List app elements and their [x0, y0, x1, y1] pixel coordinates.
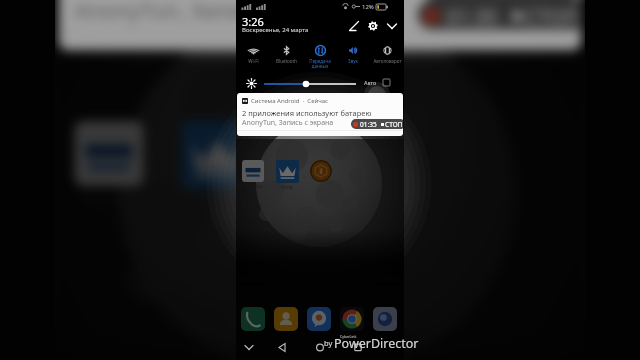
button[interactable]: Система Android · Сейчас: [58, 0, 581, 50]
staticText: Bluetooth: [276, 58, 297, 64]
staticText: CyberLink: [340, 334, 357, 339]
button[interactable]: Передача данных: [303, 42, 337, 70]
staticText: TTL Mas: [243, 183, 263, 190]
button[interactable]: TTL Master: [74, 121, 144, 186]
button[interactable]: Система Android · Сейчас: [237, 93, 403, 136]
button[interactable]: Settings: [366, 19, 380, 33]
staticText: СТОП: [525, 3, 581, 30]
staticText: Автоповорот: [373, 58, 402, 64]
button[interactable]: App: [310, 160, 332, 182]
button[interactable]: Chrome: [340, 307, 364, 331]
button[interactable]: Автоповорот: [370, 42, 404, 64]
button[interactable]: Home: [314, 340, 326, 355]
button[interactable]: KingRoot: [181, 121, 254, 189]
button[interactable]: Recents: [352, 340, 364, 355]
button[interactable]: Wi-Fi: [236, 42, 270, 64]
staticText: AnonyTun, Запись с экрана: [242, 118, 334, 128]
staticText: 01:35: [446, 3, 500, 30]
button[interactable]: Auto brightness: [383, 79, 390, 86]
staticText: Авто: [364, 79, 377, 86]
button[interactable]: Bluetooth: [269, 42, 303, 64]
button[interactable]: Contacts: [274, 307, 298, 331]
button[interactable]: Camera: [373, 307, 397, 331]
staticText: СТОП: [385, 120, 403, 129]
staticText: Звук: [348, 58, 358, 64]
button[interactable]: Edit: [347, 19, 361, 33]
staticText: TTL Mas: [77, 189, 140, 209]
button[interactable]: 01:35: [353, 119, 403, 129]
button[interactable]: 01:35: [424, 0, 581, 30]
button[interactable]: Collapse: [385, 19, 399, 33]
staticText: Передача данных: [309, 58, 331, 70]
staticText: Wi-Fi: [248, 58, 259, 64]
button[interactable]: Back: [276, 340, 288, 355]
staticText: Система Android · Сейчас: [251, 97, 329, 105]
button[interactable]: TTL Master: [242, 160, 264, 182]
staticText: Воскресенье, 24 марта: [242, 26, 309, 34]
button[interactable]: KingRoot: [276, 160, 299, 183]
staticText: AnonyTun, Запись с экрана: [74, 0, 364, 27]
staticText: 2 приложения используют батарею: [242, 108, 372, 118]
staticText: King: [200, 192, 235, 212]
button[interactable]: Phone: [241, 307, 265, 331]
button[interactable]: App: [288, 121, 358, 186]
staticText: 3:26: [242, 14, 264, 29]
button[interactable]: Brightness: [262, 79, 357, 89]
staticText: 12%: [362, 3, 374, 11]
button[interactable]: Messages: [307, 307, 331, 331]
button[interactable]: Звук: [336, 42, 370, 64]
staticText: King: [282, 184, 293, 191]
staticText: PowerDirector: [334, 335, 419, 352]
staticText: by: [324, 338, 333, 348]
staticText: 01:35: [360, 120, 377, 129]
button[interactable]: Hide keyboard: [243, 340, 255, 355]
